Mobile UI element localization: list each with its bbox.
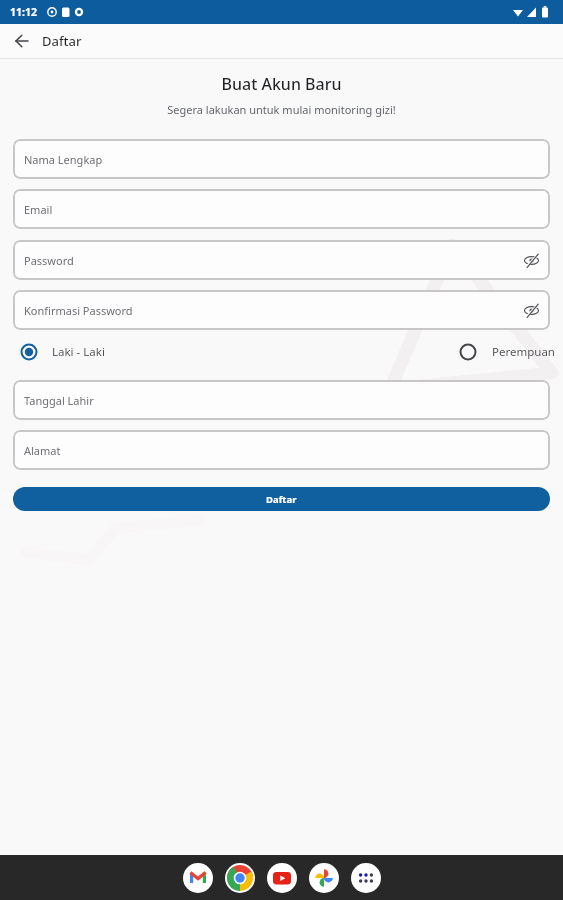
staticText: Email [24, 202, 53, 217]
button[interactable]: Daftar [13, 487, 550, 511]
button[interactable]: Laki - Laki [20, 343, 105, 361]
button[interactable] [351, 863, 381, 893]
staticText: Perempuan [492, 344, 555, 360]
staticText: Buat Akun Baru [0, 73, 563, 95]
staticText: Alamat [24, 443, 61, 458]
button[interactable]: Konfirmasi Password [24, 290, 539, 330]
staticText: Konfirmasi Password [24, 303, 133, 318]
button[interactable] [267, 863, 297, 893]
staticText: Nama Lengkap [24, 152, 103, 167]
staticText: Laki - Laki [52, 344, 105, 360]
button[interactable]: Password [24, 240, 539, 280]
staticText: 11:12 [10, 5, 37, 19]
staticText: Segera lakukan untuk mulai monitoring gi… [0, 102, 563, 117]
button[interactable]: Email [24, 189, 539, 229]
staticText: Tanggal Lahir [24, 393, 94, 408]
button[interactable] [225, 863, 255, 893]
button[interactable] [10, 29, 34, 53]
staticText: Password [24, 253, 74, 268]
button[interactable] [183, 863, 213, 893]
button[interactable]: Alamat [24, 430, 539, 470]
staticText: Daftar [42, 32, 82, 50]
button[interactable] [309, 863, 339, 893]
button[interactable]: Nama Lengkap [24, 139, 539, 179]
staticText: Daftar [266, 493, 297, 506]
button[interactable]: Perempuan [459, 343, 555, 361]
button[interactable]: Tanggal Lahir [24, 380, 539, 420]
